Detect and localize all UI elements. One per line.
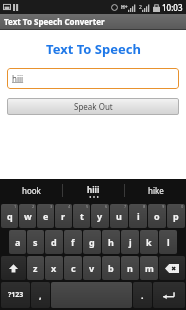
button[interactable]: h bbox=[102, 230, 120, 254]
staticText: 1 bbox=[14, 204, 17, 209]
button[interactable]: hike bbox=[125, 179, 186, 202]
button[interactable]: g bbox=[83, 230, 101, 254]
staticText: g bbox=[89, 236, 95, 248]
button[interactable]: s bbox=[27, 230, 44, 254]
staticText: 8 bbox=[143, 204, 146, 209]
staticText: q bbox=[7, 210, 13, 222]
staticText: hiii bbox=[87, 184, 100, 195]
button[interactable]: p bbox=[167, 204, 185, 228]
button[interactable]: hook bbox=[0, 179, 62, 202]
staticText: 2 bbox=[139, 4, 142, 11]
button[interactable]: c bbox=[64, 256, 82, 280]
staticText: 0 bbox=[181, 204, 184, 209]
staticText: n bbox=[127, 262, 133, 274]
staticText: m bbox=[145, 262, 154, 274]
button[interactable]: y bbox=[91, 204, 109, 228]
button[interactable]: . bbox=[133, 282, 152, 308]
staticText: w bbox=[24, 210, 32, 222]
staticText: a bbox=[15, 236, 21, 248]
staticText: . bbox=[141, 289, 144, 301]
staticText: Text To Speech bbox=[46, 40, 141, 58]
button[interactable]: hiii bbox=[7, 68, 179, 89]
button[interactable]: z bbox=[27, 256, 44, 280]
button[interactable]: q bbox=[1, 204, 18, 228]
staticText: b bbox=[108, 262, 114, 274]
staticText: r bbox=[61, 210, 66, 222]
staticText: i bbox=[137, 210, 140, 222]
staticText: 2 bbox=[32, 204, 35, 209]
staticText: 3 bbox=[50, 204, 53, 209]
staticText: u bbox=[116, 210, 122, 222]
staticText: , bbox=[39, 289, 42, 301]
staticText: p bbox=[173, 210, 179, 222]
staticText: 4 bbox=[68, 204, 71, 209]
staticText: d bbox=[51, 236, 57, 248]
button[interactable]: v bbox=[83, 256, 101, 280]
button[interactable]: u bbox=[110, 204, 128, 228]
button[interactable]: ?123 bbox=[1, 282, 30, 308]
button[interactable]: w bbox=[19, 204, 36, 228]
button[interactable]: k bbox=[140, 230, 158, 254]
button[interactable]: b bbox=[102, 256, 120, 280]
staticText: Speak Out bbox=[74, 101, 113, 112]
staticText: l bbox=[167, 236, 170, 248]
staticText: e bbox=[43, 210, 49, 222]
staticText: 7 bbox=[124, 204, 127, 209]
staticText: t bbox=[80, 210, 84, 222]
staticText: Text To Speech Converter bbox=[4, 16, 105, 27]
staticText: x bbox=[51, 262, 57, 274]
staticText: s bbox=[33, 236, 38, 248]
button[interactable]: Speak Out bbox=[7, 98, 179, 115]
button[interactable]: hiii bbox=[63, 179, 124, 202]
button[interactable]: n bbox=[121, 256, 139, 280]
button[interactable]: m bbox=[140, 256, 158, 280]
staticText: 10:03 bbox=[162, 2, 183, 13]
staticText: hook bbox=[22, 185, 41, 196]
button[interactable]: o bbox=[148, 204, 166, 228]
staticText: y bbox=[97, 210, 103, 222]
staticText: 6 bbox=[105, 204, 108, 209]
button[interactable]: a bbox=[9, 230, 26, 254]
button[interactable]: d bbox=[45, 230, 63, 254]
button[interactable]: Backspace bbox=[159, 256, 185, 280]
staticText: H+ bbox=[121, 4, 128, 11]
staticText: h bbox=[108, 236, 114, 248]
button[interactable]: x bbox=[45, 256, 63, 280]
staticText: hike bbox=[148, 185, 164, 196]
staticText: z bbox=[33, 262, 38, 274]
button[interactable]: t bbox=[73, 204, 90, 228]
button[interactable]: f bbox=[64, 230, 82, 254]
staticText: 9 bbox=[162, 204, 165, 209]
staticText: o bbox=[154, 210, 160, 222]
staticText: k bbox=[146, 236, 152, 248]
button[interactable]: Shift bbox=[1, 256, 26, 280]
button[interactable]: r bbox=[55, 204, 72, 228]
button[interactable]: Space bbox=[51, 282, 132, 308]
staticText: ?123 bbox=[8, 290, 24, 300]
staticText: v bbox=[89, 262, 95, 274]
button[interactable]: i bbox=[129, 204, 147, 228]
staticText: hiii bbox=[12, 73, 24, 84]
button[interactable]: l bbox=[159, 230, 177, 254]
button[interactable]: , bbox=[31, 282, 50, 308]
staticText: c bbox=[71, 262, 76, 274]
staticText: 5 bbox=[86, 204, 89, 209]
button[interactable]: e bbox=[37, 204, 54, 228]
staticText: j bbox=[129, 236, 132, 248]
staticText: f bbox=[71, 236, 75, 248]
button[interactable]: j bbox=[121, 230, 139, 254]
button[interactable]: Enter bbox=[153, 282, 185, 308]
